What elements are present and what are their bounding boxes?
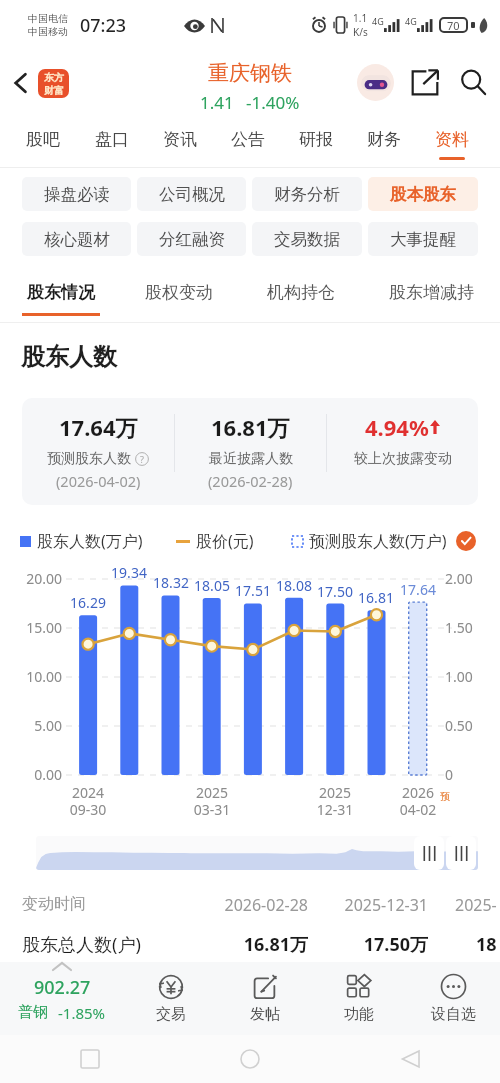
staticText: 资料 [435, 129, 469, 150]
staticText: 股东情况 [27, 282, 95, 303]
staticText: 18.08 [272, 576, 316, 595]
button[interactable]: 盘口 [77, 118, 146, 168]
staticText: 4G [372, 15, 384, 27]
staticText: 15.00 [0, 618, 62, 637]
button[interactable]: 公司概况 [137, 177, 246, 211]
button[interactable]: Profile [357, 64, 394, 101]
staticText: 16.81万 [188, 932, 308, 957]
button[interactable]: 资讯 [146, 118, 214, 168]
staticText: 中国移动 [28, 25, 68, 38]
staticText: 2026-02-28 [188, 894, 308, 916]
staticText: 70 [447, 18, 460, 33]
staticText: 股权变动 [145, 282, 213, 303]
button[interactable]: Home [230, 1039, 270, 1079]
staticText: 股本股东 [390, 184, 456, 205]
staticText: 中国电信 [28, 12, 68, 25]
staticText: 17.64万 [59, 412, 138, 442]
button[interactable]: 操盘必读 [22, 177, 131, 211]
button[interactable]: 财务分析 [252, 177, 362, 211]
staticText: 操盘必读 [44, 184, 110, 205]
button[interactable]: 股权变动 [127, 282, 231, 326]
staticText: 17.51 [231, 581, 275, 600]
staticText: 普钢 [18, 1003, 48, 1022]
button[interactable]: 发帖 [218, 962, 312, 1035]
staticText: 预测股东人数(万户) [309, 530, 447, 552]
button[interactable]: Recents [70, 1039, 110, 1079]
staticText: 预 [440, 790, 450, 803]
staticText: 0 [445, 765, 454, 784]
staticText: 股东总人数(户) [22, 932, 141, 957]
staticText: 资讯 [163, 129, 197, 150]
staticText: 20.00 [0, 569, 62, 588]
staticText: 1.1 [353, 11, 368, 25]
button[interactable]: 902.27 [0, 962, 124, 1035]
staticText: 5.00 [0, 716, 62, 735]
staticText: 交易 [156, 1005, 186, 1024]
button[interactable]: Search [455, 64, 492, 101]
button[interactable]: Back [4, 66, 38, 100]
staticText: 0.00 [0, 765, 62, 784]
staticText: 18.05 [190, 576, 234, 595]
button[interactable]: Range handle [446, 836, 476, 870]
staticText: 分红融资 [159, 229, 225, 250]
button[interactable]: Back [390, 1039, 430, 1079]
staticText: K/s [353, 25, 368, 39]
staticText: 1.00 [445, 667, 473, 686]
button[interactable]: Share [406, 64, 443, 101]
staticText: (2026-04-02) [56, 471, 141, 491]
staticText: 07:23 [80, 13, 127, 38]
staticText: (2026-02-28) [208, 471, 293, 491]
staticText: 财务分析 [274, 184, 340, 205]
staticText: 大事提醒 [390, 229, 456, 250]
staticText: 10.00 [0, 667, 62, 686]
staticText: 18 [476, 932, 497, 957]
button[interactable]: 核心题材 [22, 222, 131, 256]
staticText: 股东增减持 [389, 282, 474, 303]
staticText: 1.50 [445, 618, 473, 637]
staticText: 股价(元) [196, 530, 254, 552]
staticText: 2.00 [445, 569, 473, 588]
staticText: 17.64 [396, 580, 440, 599]
staticText: 股东人数 [21, 342, 117, 372]
staticText: 16.29 [66, 593, 110, 612]
staticText: 2025- [455, 894, 497, 916]
button[interactable]: 股吧 [8, 118, 77, 168]
button[interactable]: 研报 [282, 118, 350, 168]
staticText: 重庆钢铁 [208, 60, 292, 86]
button[interactable]: 分红融资 [137, 222, 246, 256]
button[interactable]: East Money [38, 69, 69, 98]
button[interactable]: Range handle [414, 836, 444, 870]
button[interactable]: 设自选 [406, 962, 500, 1035]
button[interactable]: 股东情况 [9, 282, 113, 326]
staticText: 预测股东人数 [47, 450, 131, 468]
staticText: 股吧 [26, 129, 60, 150]
button[interactable]: 股本股东 [368, 177, 478, 211]
button[interactable]: Confirm [456, 531, 476, 551]
staticText: 东方 [44, 71, 64, 84]
button[interactable]: 资料 [418, 118, 486, 168]
button[interactable]: 大事提醒 [368, 222, 478, 256]
button[interactable]: 财务 [350, 118, 418, 168]
staticText: 交易数据 [274, 229, 340, 250]
button[interactable]: 交易数据 [252, 222, 362, 256]
staticText: 最近披露人数 [209, 450, 293, 468]
button[interactable]: 功能 [312, 962, 406, 1035]
staticText: 2025 03-31 [187, 783, 237, 819]
staticText: -1.85% [58, 1003, 106, 1023]
button[interactable]: 交易 [124, 962, 218, 1035]
staticText: 设自选 [431, 1005, 476, 1024]
staticText: 盘口 [95, 129, 129, 150]
staticText: 核心题材 [44, 229, 110, 250]
button[interactable]: 公告 [214, 118, 282, 168]
staticText: 财务 [367, 129, 401, 150]
staticText: 股东人数(万户) [37, 530, 143, 552]
staticText: 17.50万 [308, 932, 428, 957]
button[interactable]: 机构持仓 [249, 282, 353, 326]
staticText: -1.40% [246, 91, 300, 114]
staticText: 0.50 [445, 716, 473, 735]
staticText: 4G [405, 15, 417, 27]
staticText: 17.50 [313, 582, 357, 601]
staticText: 2025 12-31 [310, 783, 360, 819]
button[interactable]: 股东增减持 [379, 282, 483, 326]
staticText: 财富 [44, 84, 64, 97]
